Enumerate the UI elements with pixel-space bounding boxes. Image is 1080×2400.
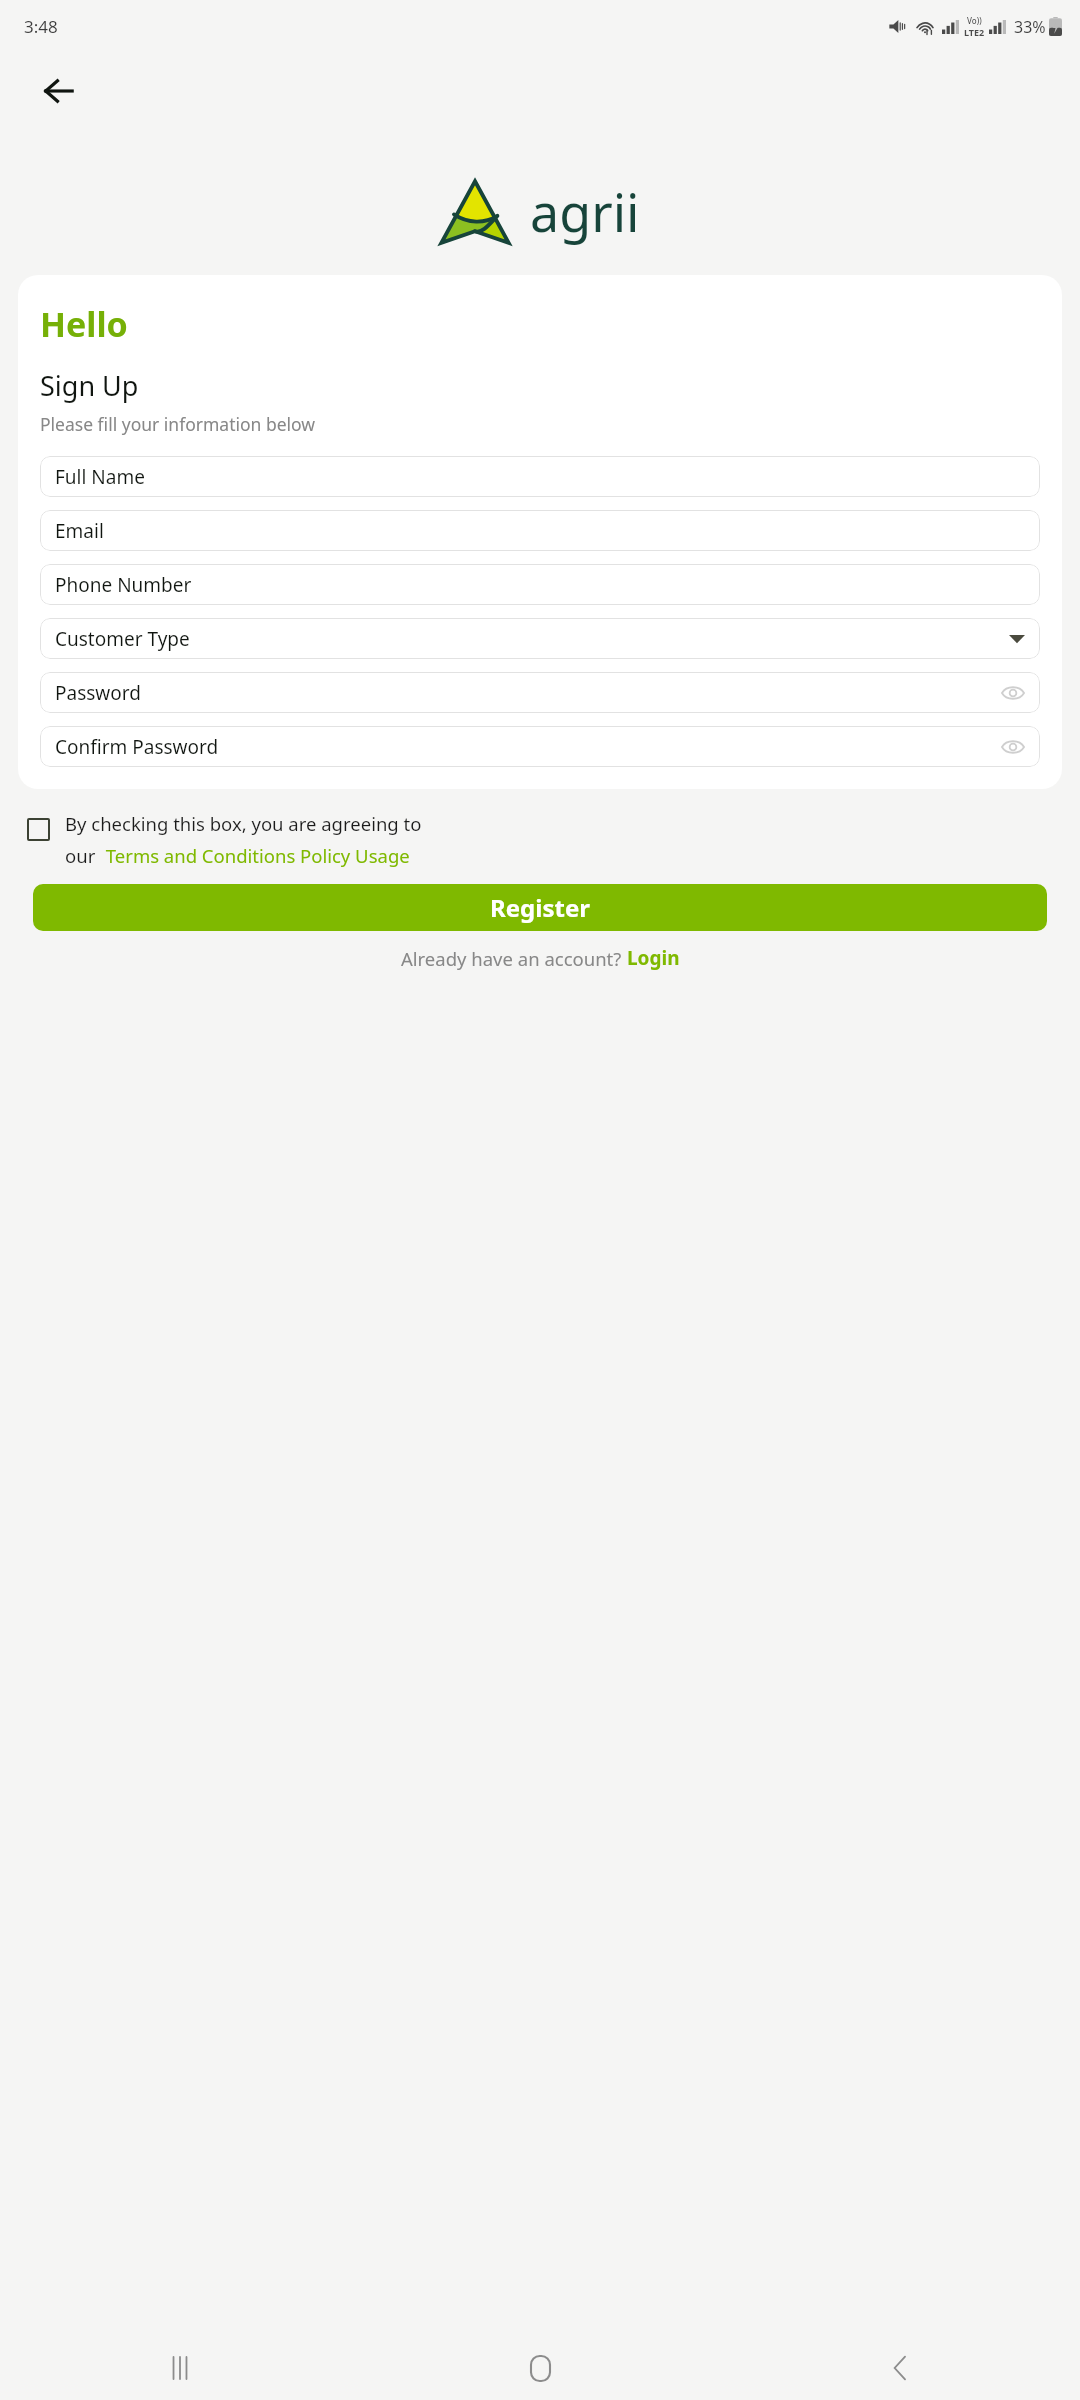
staticText: Customer Type bbox=[55, 626, 190, 652]
staticText: Register bbox=[490, 891, 590, 924]
staticText: our bbox=[65, 843, 101, 868]
button[interactable]: Agree to terms checkbox bbox=[24, 815, 52, 843]
button[interactable]: Password bbox=[40, 672, 1040, 713]
staticText: Hello bbox=[40, 301, 128, 347]
button[interactable]: Phone Number bbox=[40, 564, 1040, 605]
staticText: Full Name bbox=[55, 464, 145, 490]
staticText: Password bbox=[55, 680, 141, 706]
staticText: Email bbox=[55, 518, 104, 544]
staticText: By checking this box, you are agreeing t… bbox=[65, 811, 422, 836]
staticText: Sign Up bbox=[40, 367, 139, 404]
staticText: Confirm Password bbox=[55, 734, 219, 760]
staticText: Vo)) bbox=[967, 15, 982, 26]
button[interactable]: Home bbox=[512, 2340, 568, 2396]
staticText: 3:48 bbox=[24, 15, 58, 38]
staticText: Already have an account? bbox=[401, 946, 627, 971]
button[interactable]: Recent apps bbox=[152, 2340, 208, 2396]
button[interactable]: Back bbox=[36, 68, 82, 114]
button[interactable]: Email bbox=[40, 510, 1040, 551]
button[interactable]: Login bbox=[627, 945, 680, 971]
staticText: agrii bbox=[530, 176, 640, 247]
staticText: LTE2 bbox=[964, 26, 985, 38]
staticText: Please fill your information below bbox=[40, 412, 316, 436]
button[interactable]: Back bbox=[872, 2340, 928, 2396]
button[interactable]: Customer Type bbox=[40, 618, 1040, 659]
button[interactable]: Confirm Password bbox=[40, 726, 1040, 767]
button[interactable]: Register bbox=[33, 884, 1047, 931]
staticText: 33% bbox=[1014, 16, 1046, 38]
button[interactable]: Terms and Conditions Policy Usage bbox=[101, 843, 410, 868]
staticText: Phone Number bbox=[55, 572, 192, 598]
button[interactable]: Full Name bbox=[40, 456, 1040, 497]
